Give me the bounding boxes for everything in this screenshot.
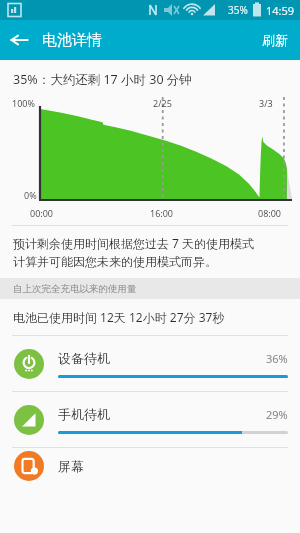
staticText: 预计剩余使用时间根据您过去 7 天的使用模式 [13, 235, 255, 251]
staticText: 00:00 [30, 207, 54, 219]
staticText: 屏幕 [58, 458, 288, 474]
button[interactable]: Back [0, 21, 38, 59]
staticText: 14:59 [266, 3, 295, 18]
staticText: 16:00 [150, 207, 174, 219]
staticText: 电池已使用时间 12天 12小时 27分 37秒 [13, 309, 225, 325]
staticText: 2/25 [153, 97, 172, 109]
staticText: 刷新 [262, 32, 288, 48]
button[interactable]: 手机待机 [0, 392, 300, 447]
staticText: 计算并可能因您未来的使用模式而异。 [13, 254, 217, 269]
staticText: 08:00 [258, 207, 282, 219]
staticText: 35% [228, 3, 248, 17]
staticText: 自上次完全充电以来的使用量 [13, 283, 137, 295]
staticText: 0% [24, 189, 37, 201]
staticText: 29% [266, 407, 288, 422]
staticText: 100% [12, 97, 35, 109]
staticText: 手机待机 [58, 406, 266, 422]
button[interactable]: 刷新 [250, 23, 300, 57]
staticText: 3/3 [259, 97, 273, 109]
button[interactable]: 屏幕 [0, 448, 300, 484]
staticText: 设备待机 [58, 350, 266, 366]
button[interactable]: 设备待机 [0, 336, 300, 391]
staticText: 36% [266, 351, 288, 366]
staticText: 电池详情 [42, 31, 102, 50]
staticText: 35%：大约还剩 17 小时 30 分钟 [13, 71, 192, 88]
